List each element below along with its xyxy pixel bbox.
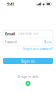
staticText: 9:41 [7, 1, 14, 7]
staticText: Password [5, 40, 17, 44]
staticText: Email [5, 31, 15, 36]
button[interactable]: Sign in [3, 58, 53, 64]
button[interactable]: Sign in with WhatsApp [25, 80, 31, 86]
staticText: Show [44, 40, 51, 44]
button[interactable]: Email [3, 30, 53, 38]
staticText: Or sign in with [17, 75, 38, 79]
button[interactable]: Forgot your password? [23, 47, 53, 51]
staticText: Sign in [21, 58, 35, 64]
staticText: Forgot your password? [23, 47, 53, 51]
staticText: name@mail.com [18, 32, 38, 35]
button[interactable]: Password [3, 38, 53, 46]
